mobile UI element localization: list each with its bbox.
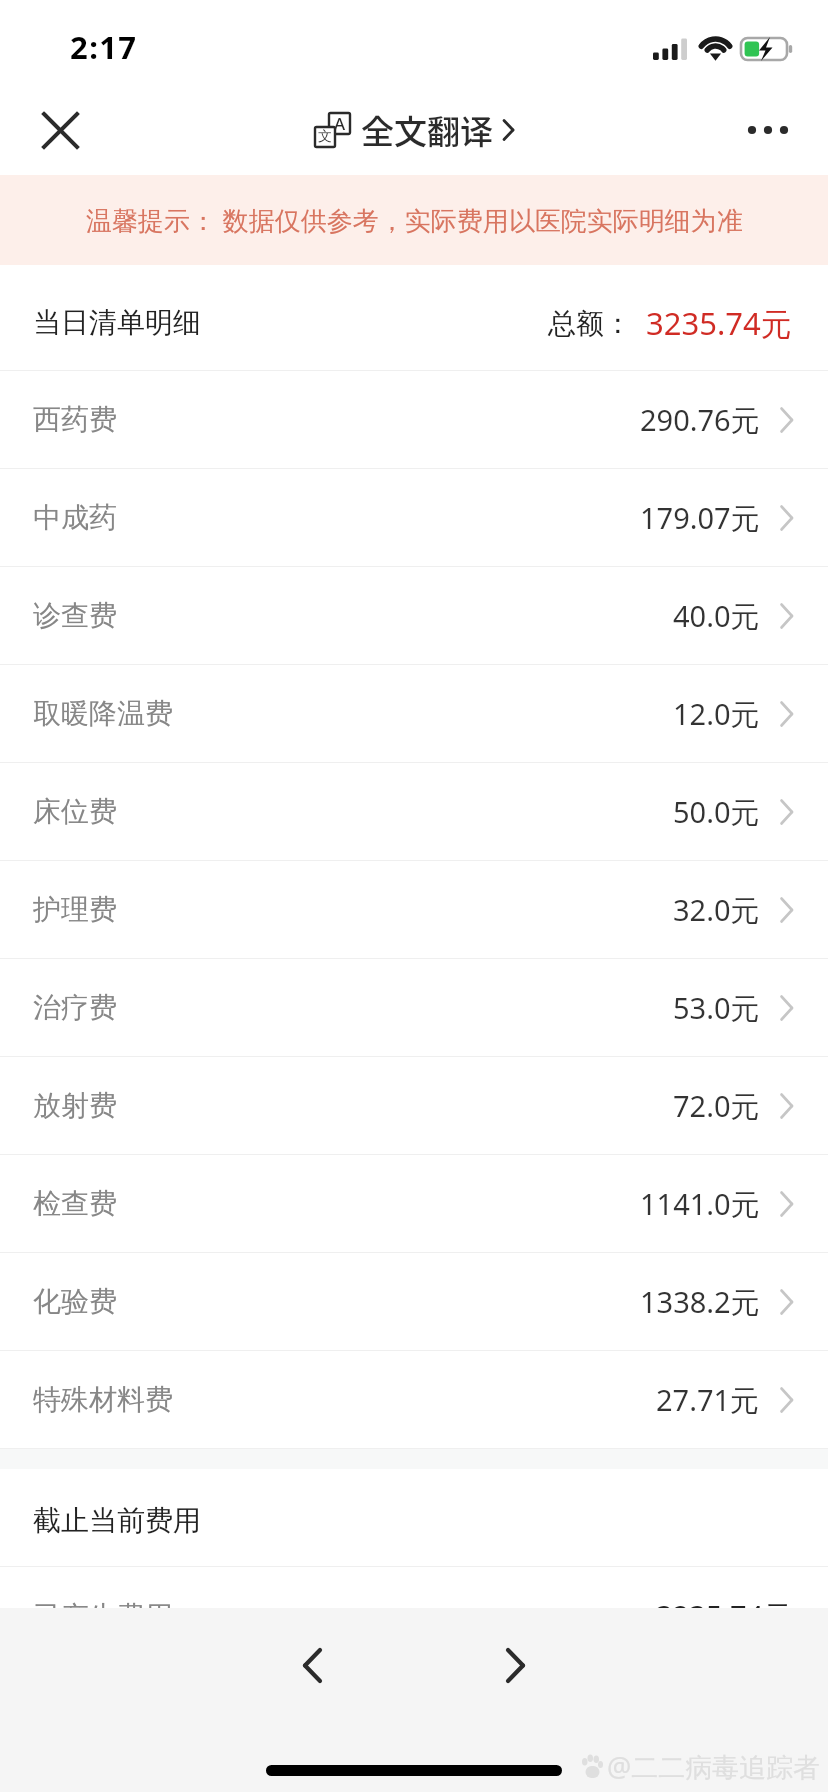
staticText: 32.0元	[673, 890, 760, 930]
button[interactable]: 特殊材料费	[0, 1351, 828, 1449]
staticText: 放射费	[33, 1088, 117, 1123]
staticText: 3235.74元	[656, 1596, 793, 1636]
staticText: 西药费	[33, 402, 117, 437]
staticText: 53.0元	[673, 988, 760, 1028]
staticText: 取暖降温费	[33, 696, 173, 731]
staticText: 40.0元	[673, 596, 760, 636]
staticText: 治疗费	[33, 990, 117, 1025]
staticText: 中成药	[33, 500, 117, 535]
staticText: 温馨提示： 数据仅供参考，实际费用以医院实际明细为准	[86, 202, 743, 238]
staticText: 总额：	[548, 306, 632, 341]
staticText: A	[334, 112, 346, 133]
button[interactable]: 中成药	[0, 469, 828, 567]
button[interactable]: A	[315, 106, 515, 154]
staticText: 27.71元	[656, 1380, 760, 1420]
staticText: 全文翻译	[361, 106, 493, 154]
staticText: 3235.74元	[646, 302, 792, 344]
staticText: 290.76元	[640, 400, 760, 440]
staticText: 诊查费	[33, 598, 117, 633]
staticText: @二二病毒追踪者	[607, 1748, 821, 1785]
button[interactable]: 化验费	[0, 1253, 828, 1351]
staticText: 12.0元	[673, 694, 760, 734]
button[interactable]: 取暖降温费	[0, 665, 828, 763]
staticText: 床位费	[33, 794, 117, 829]
button[interactable]: 诊查费	[0, 567, 828, 665]
button[interactable]: Forward	[475, 1625, 555, 1705]
staticText: 护理费	[33, 892, 117, 927]
staticText: 检查费	[33, 1186, 117, 1221]
button[interactable]: Close	[22, 92, 98, 168]
staticText: 截止当前费用	[33, 1503, 201, 1538]
button[interactable]: 护理费	[0, 861, 828, 959]
staticText: 2:17	[70, 26, 138, 68]
staticText: 已产生费用	[33, 1599, 173, 1634]
staticText: 1338.2元	[640, 1282, 760, 1322]
staticText: 文	[318, 128, 332, 146]
staticText: 179.07元	[640, 498, 760, 538]
button[interactable]: 床位费	[0, 763, 828, 861]
staticText: 72.0元	[673, 1086, 760, 1126]
button[interactable]: 检查费	[0, 1155, 828, 1253]
staticText: 50.0元	[673, 792, 760, 832]
button[interactable]: 放射费	[0, 1057, 828, 1155]
button[interactable]: More options	[730, 92, 806, 168]
button[interactable]: 西药费	[0, 371, 828, 469]
button[interactable]: 治疗费	[0, 959, 828, 1057]
button[interactable]: 已产生费用	[0, 1567, 828, 1665]
staticText: 化验费	[33, 1284, 117, 1319]
staticText: 特殊材料费	[33, 1382, 173, 1417]
staticText: 当日清单明细	[33, 305, 201, 340]
staticText: 1141.0元	[640, 1184, 760, 1224]
button[interactable]: Back	[272, 1625, 352, 1705]
